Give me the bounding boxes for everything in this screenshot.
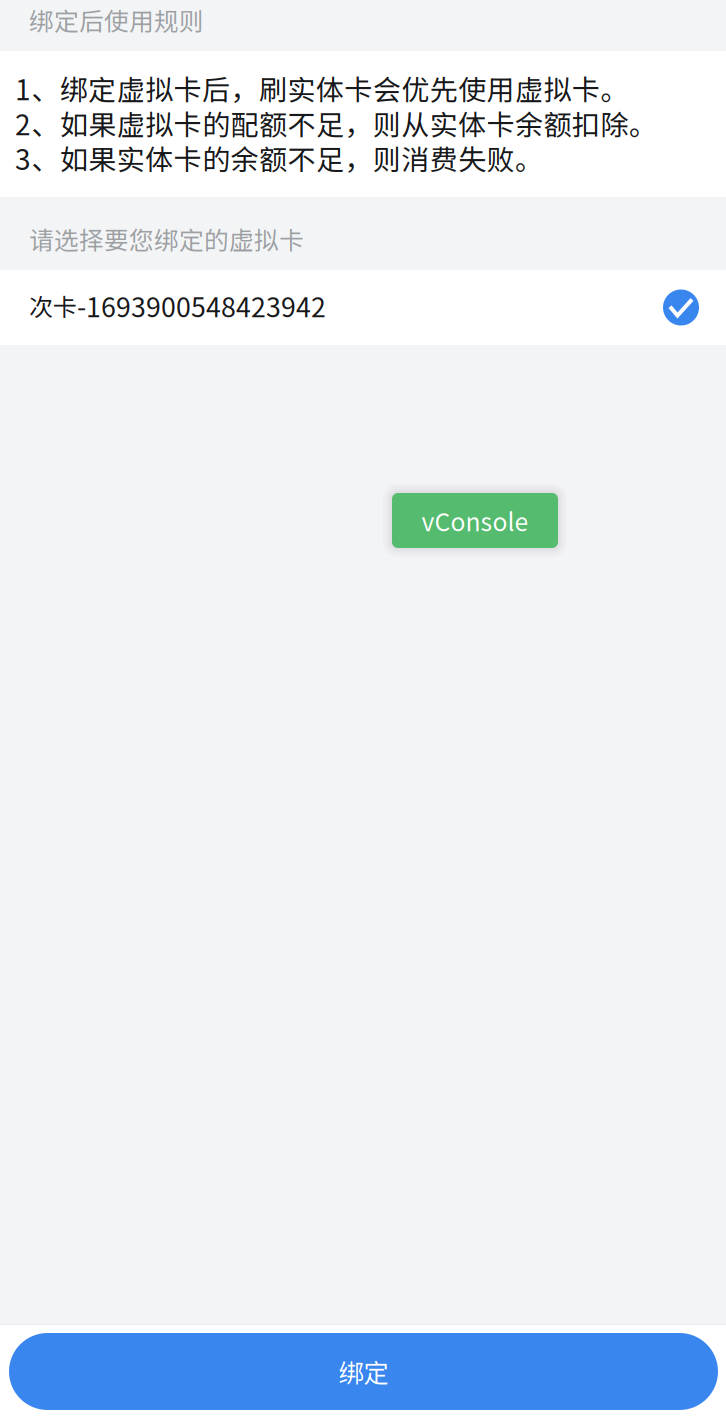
staticText: 绑定后使用规则 <box>29 2 204 38</box>
button[interactable]: vConsole <box>383 484 567 557</box>
button[interactable]: 绑定 <box>9 1333 718 1410</box>
staticText: 2、如果虚拟卡的配额不足，则从实体卡余额扣除。 <box>15 103 657 143</box>
staticText: -1693900548423942 <box>77 286 326 325</box>
staticText: 请选择要您绑定的虚拟卡 <box>29 221 304 257</box>
staticText: 绑定 <box>338 1353 388 1390</box>
staticText: 次卡 <box>29 288 77 323</box>
staticText: 3、如果实体卡的余额不足，则消费失败。 <box>15 138 543 178</box>
staticText: 1、绑定虚拟卡后，刷实体卡会优先使用虚拟卡。 <box>15 68 628 108</box>
staticText: vConsole <box>421 503 528 538</box>
button[interactable]: 次卡-1693900548423942，已选中 <box>0 270 726 345</box>
